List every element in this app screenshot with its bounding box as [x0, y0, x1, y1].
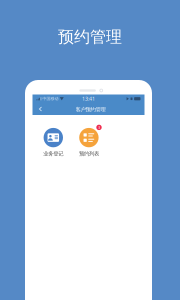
staticText: 预约管理: [58, 27, 122, 47]
button[interactable]: Back: [32, 106, 42, 112]
staticText: 13:41: [82, 95, 95, 102]
staticText: 3: [98, 125, 100, 130]
staticText: 客户预约管理: [75, 106, 105, 113]
staticText: 预约列表: [79, 150, 99, 157]
staticText: 业务登记: [43, 150, 63, 157]
button[interactable]: 3: [71, 128, 107, 157]
staticText: 中国移动: [43, 96, 59, 101]
button[interactable]: 业务登记: [35, 128, 71, 157]
